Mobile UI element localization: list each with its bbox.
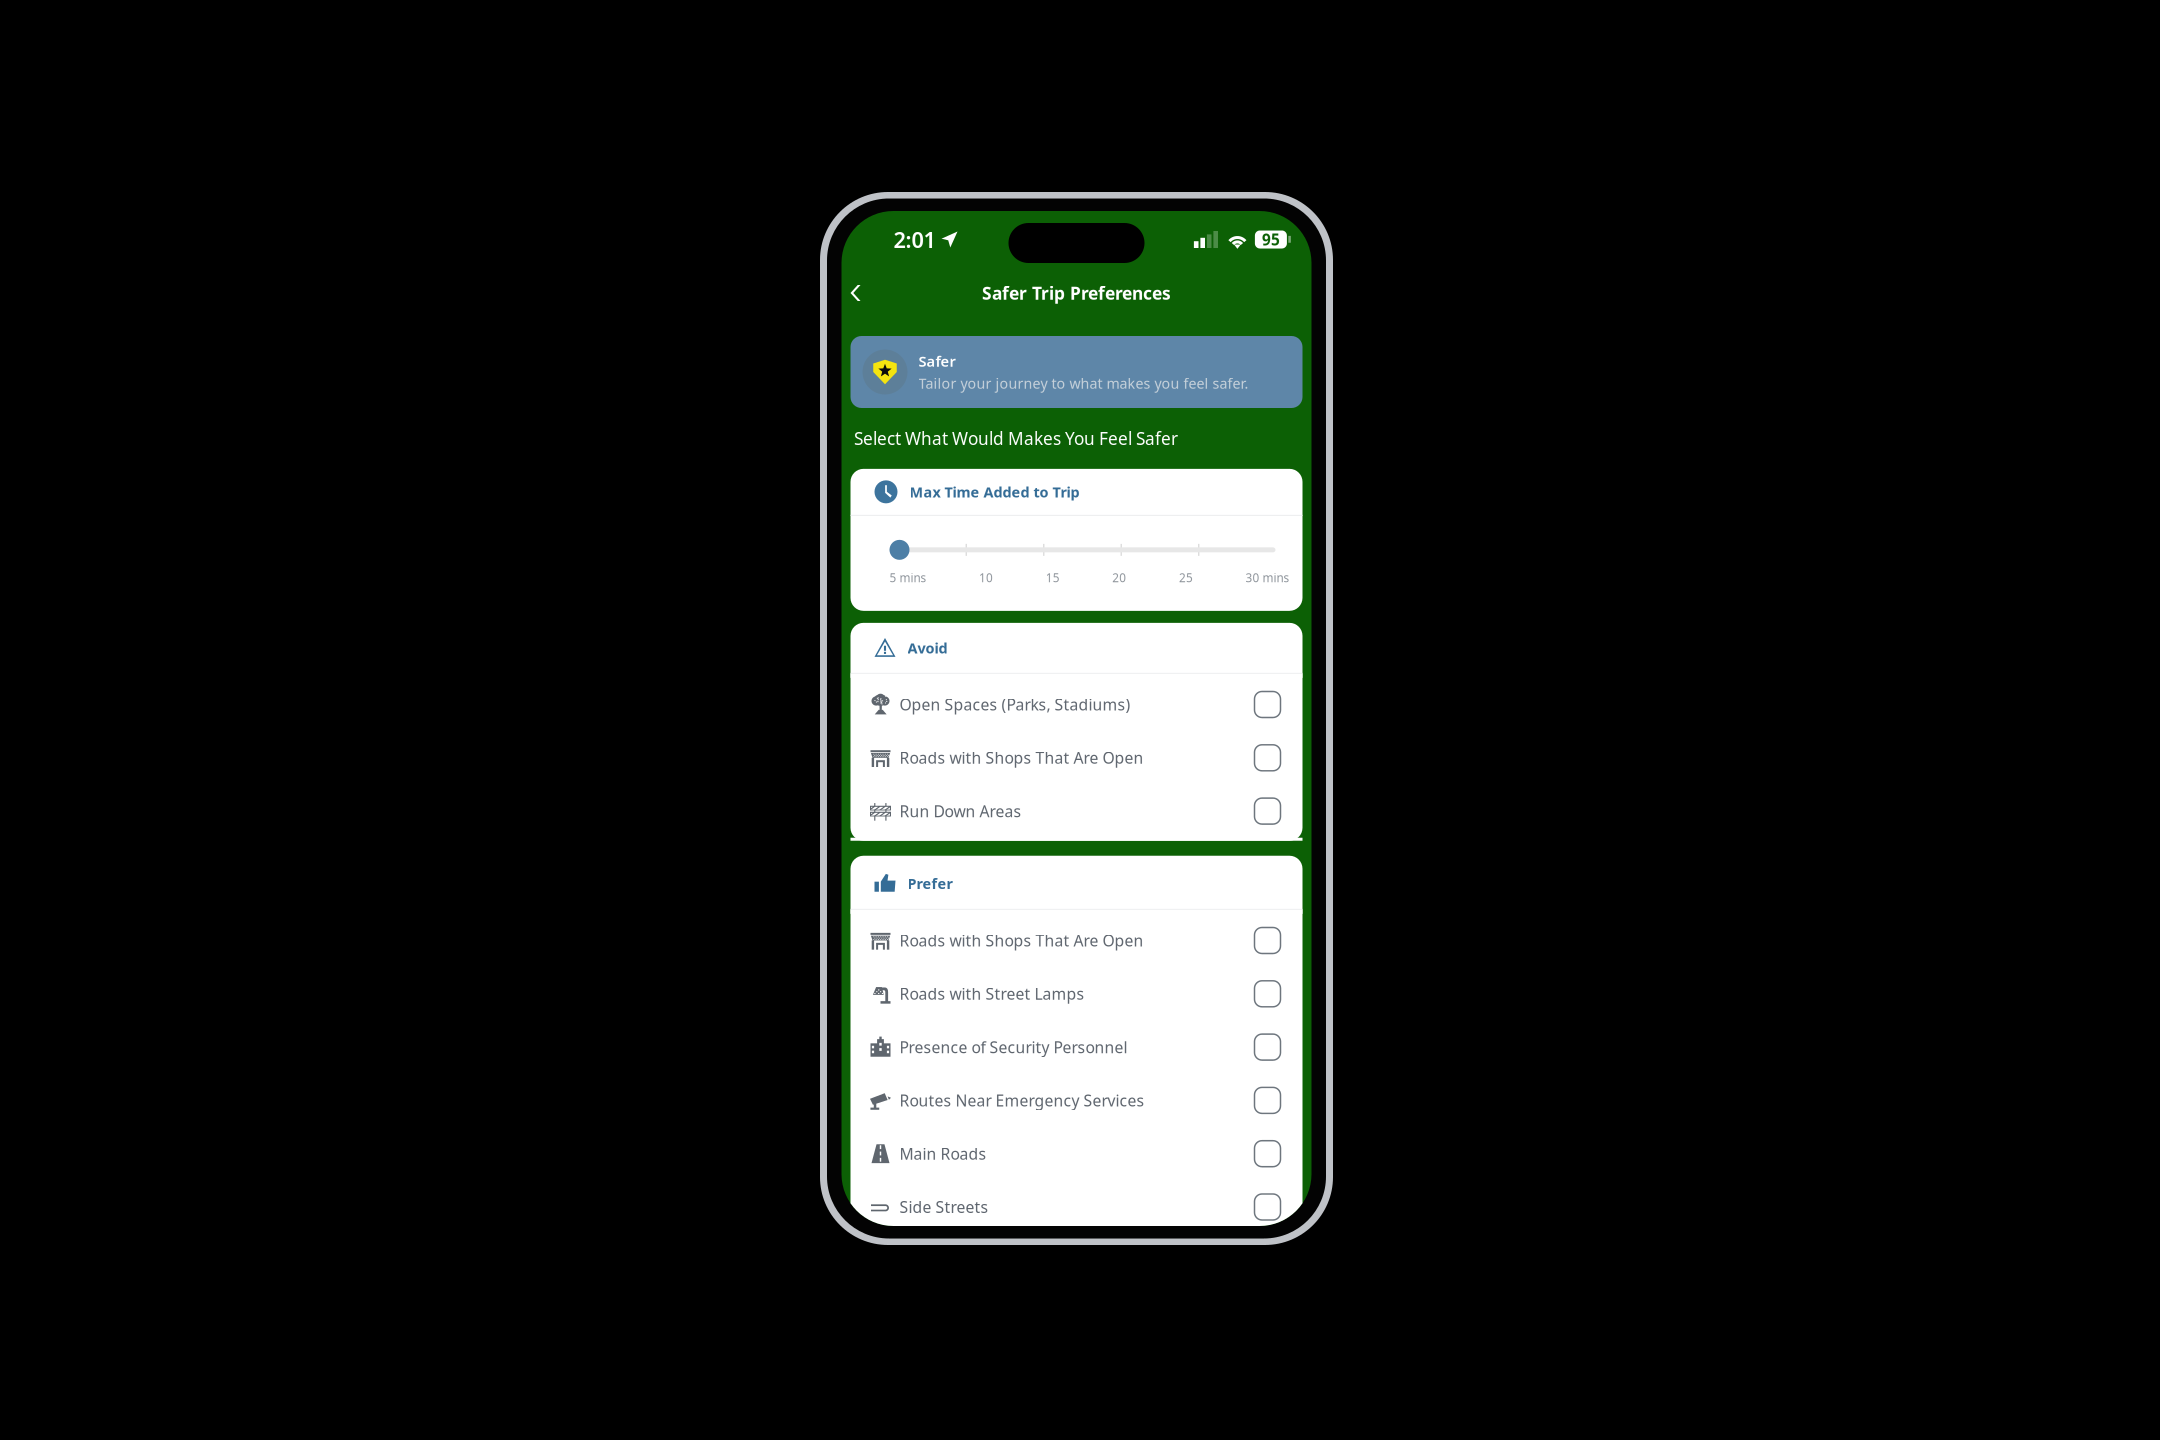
button[interactable]: Back xyxy=(841,271,882,315)
staticText: Safer xyxy=(918,351,955,371)
staticText: Roads with Street Lamps xyxy=(899,983,1084,1004)
staticText: Presence of Security Personnel xyxy=(899,1037,1127,1057)
button[interactable]: Open Spaces (Parks, Stadiums) xyxy=(850,678,1302,731)
button[interactable]: Main Roads xyxy=(850,1127,1302,1180)
button[interactable]: Side Streets xyxy=(850,1180,1302,1234)
staticText: Main Roads xyxy=(899,1143,986,1164)
button[interactable]: Routes Near Emergency Services xyxy=(850,1074,1302,1127)
staticText: Avoid xyxy=(907,638,947,657)
button[interactable]: Run Down Areas xyxy=(850,784,1302,838)
staticText: Run Down Areas xyxy=(899,801,1021,821)
staticText: 95 xyxy=(1262,229,1280,250)
staticText: Prefer xyxy=(907,874,952,893)
staticText: Select What Would Makes You Feel Safer xyxy=(854,427,1178,450)
staticText: Safer Trip Preferences xyxy=(982,281,1171,304)
staticText: Side Streets xyxy=(899,1197,988,1217)
button[interactable]: Roads with Street Lamps xyxy=(850,967,1302,1020)
staticText: Open Spaces (Parks, Stadiums) xyxy=(899,694,1130,715)
staticText: 25 xyxy=(1179,570,1193,585)
staticText: Routes Near Emergency Services xyxy=(899,1090,1144,1111)
staticText: 15 xyxy=(1046,570,1060,585)
staticText: Tailor your journey to what makes you fe… xyxy=(918,374,1248,393)
button[interactable]: Roads with Shops That Are Open xyxy=(850,731,1302,784)
staticText: 10 xyxy=(979,570,993,585)
staticText: Max Time Added to Trip xyxy=(909,482,1079,501)
staticText: Roads with Shops That Are Open xyxy=(899,747,1143,768)
button[interactable]: Safer xyxy=(850,336,1302,408)
staticText: 2:01 xyxy=(893,225,935,254)
button[interactable]: Roads with Shops That Are Open xyxy=(850,914,1302,967)
staticText: 30 mins xyxy=(1245,570,1289,585)
staticText: 20 xyxy=(1112,570,1126,585)
staticText: 5 mins xyxy=(889,570,926,585)
button[interactable]: Presence of Security Personnel xyxy=(850,1020,1302,1074)
staticText: Roads with Shops That Are Open xyxy=(899,930,1143,951)
